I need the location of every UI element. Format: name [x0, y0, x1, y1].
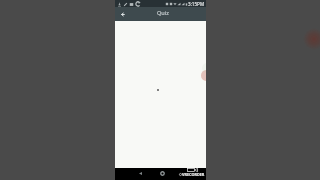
button[interactable]: Back	[115, 7, 129, 21]
button[interactable]: Home	[157, 168, 167, 178]
staticText: VRECORDER	[182, 172, 205, 177]
staticText: 3:15PM	[188, 1, 205, 7]
button[interactable]: Recents	[176, 169, 186, 179]
button[interactable]: Record	[201, 70, 206, 81]
button[interactable]: Back	[135, 168, 145, 178]
staticText: Quiz	[157, 9, 169, 17]
button[interactable]: Recorder tools	[202, 63, 206, 73]
